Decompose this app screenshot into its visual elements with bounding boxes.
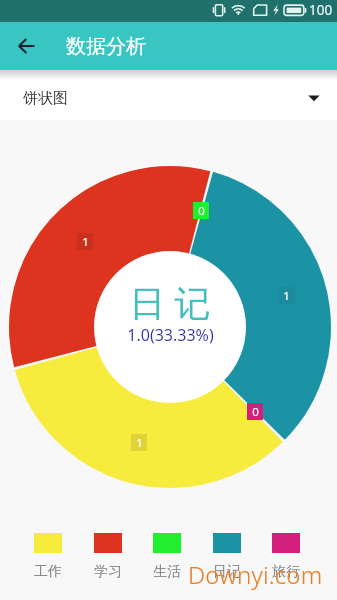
staticText: 1 (136, 435, 143, 451)
button[interactable]: 学习 (78, 533, 138, 581)
staticText: 1.0(33.33%) (127, 324, 214, 346)
button[interactable]: 生活 (137, 533, 197, 581)
button[interactable]: 饼状图 (0, 70, 337, 120)
button[interactable]: 旅行 (256, 533, 316, 581)
staticText: 数据分析 (66, 34, 146, 59)
staticText: 生活 (153, 563, 181, 581)
button[interactable]: 日记 (197, 533, 257, 581)
staticText: 旅行 (272, 563, 300, 581)
staticText: 饼状图 (23, 89, 68, 108)
staticText: 工作 (34, 563, 62, 581)
button[interactable]: Back (0, 22, 48, 70)
staticText: Downyi.com (188, 558, 323, 591)
staticText: 日记 (213, 563, 241, 581)
staticText: 0 (198, 203, 205, 219)
staticText: 日记 (125, 281, 215, 326)
staticText: 学习 (94, 563, 122, 581)
staticText: 0 (252, 404, 259, 420)
button[interactable]: 工作 (18, 533, 78, 581)
staticText: 1 (82, 234, 89, 250)
staticText: 1 (283, 288, 290, 304)
staticText: 100 (309, 1, 333, 19)
